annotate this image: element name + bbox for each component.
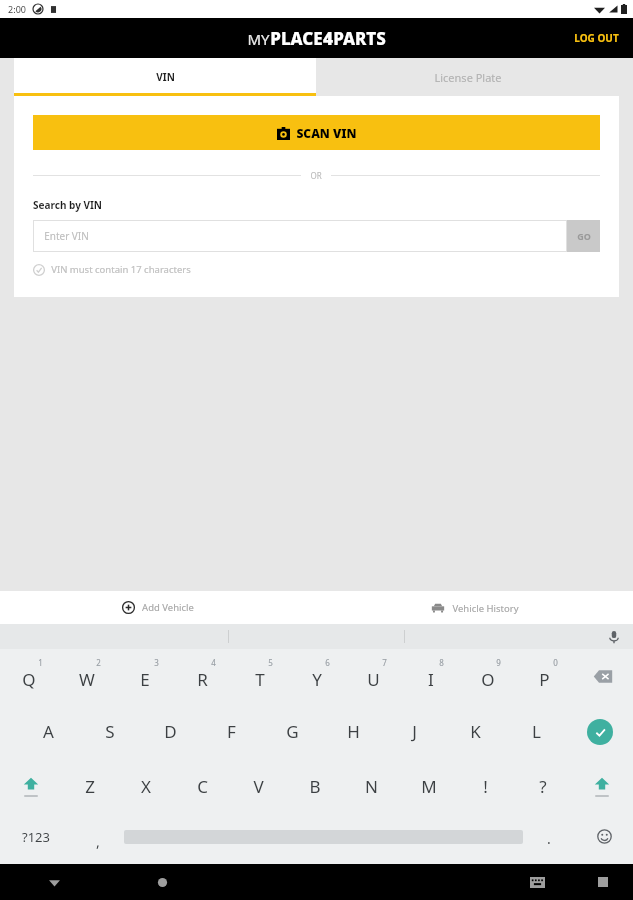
staticText: 0 bbox=[553, 657, 558, 668]
staticText: G bbox=[286, 720, 299, 743]
staticText: 8 bbox=[439, 657, 444, 668]
staticText: W bbox=[79, 668, 95, 691]
button[interactable]: H bbox=[323, 704, 384, 759]
staticText: Add Vehicle bbox=[142, 601, 194, 614]
staticText: X bbox=[141, 775, 151, 798]
staticText: 5 bbox=[268, 657, 273, 668]
button[interactable]: ! bbox=[457, 759, 514, 814]
staticText: Z bbox=[85, 775, 95, 798]
button[interactable]: Backspace bbox=[573, 649, 633, 704]
button[interactable]: X bbox=[118, 759, 174, 814]
staticText: MY bbox=[247, 29, 270, 49]
button[interactable]: Hide keyboard bbox=[501, 864, 573, 900]
button[interactable]: Home bbox=[108, 864, 216, 900]
button[interactable]: Q bbox=[0, 649, 58, 704]
button[interactable]: ?123 bbox=[0, 814, 72, 859]
button[interactable]: Add Vehicle bbox=[0, 591, 316, 624]
staticText: Vehicle History bbox=[452, 602, 519, 615]
button[interactable]: ? bbox=[514, 759, 571, 814]
staticText: S bbox=[105, 720, 115, 743]
staticText: VIN must contain 17 characters bbox=[51, 263, 191, 276]
staticText: OR bbox=[310, 170, 322, 181]
button[interactable]: F bbox=[201, 704, 262, 759]
staticText: 4 bbox=[323, 27, 333, 50]
button[interactable]: N bbox=[343, 759, 400, 814]
staticText: VIN bbox=[156, 70, 175, 84]
button[interactable]: B bbox=[286, 759, 343, 814]
button[interactable]: Recent apps bbox=[573, 864, 633, 900]
staticText: T bbox=[255, 668, 265, 691]
staticText: 2 bbox=[96, 657, 101, 668]
staticText: License Plate bbox=[434, 70, 502, 85]
staticText: R bbox=[197, 668, 208, 691]
staticText: E bbox=[140, 668, 150, 691]
button[interactable]: V bbox=[230, 759, 286, 814]
button[interactable]: Enter VIN bbox=[33, 220, 567, 252]
staticText: O bbox=[481, 668, 495, 691]
staticText: C bbox=[197, 775, 208, 798]
button[interactable]: M bbox=[400, 759, 457, 814]
button[interactable]: . bbox=[523, 814, 575, 859]
button[interactable]: W bbox=[58, 649, 116, 704]
button[interactable]: S bbox=[79, 704, 140, 759]
button[interactable]: G bbox=[262, 704, 323, 759]
staticText: U bbox=[367, 668, 380, 691]
button[interactable]: Space bbox=[124, 814, 523, 859]
button[interactable]: Z bbox=[62, 759, 118, 814]
staticText: LOG OUT bbox=[574, 31, 619, 45]
staticText: 4 bbox=[211, 657, 216, 668]
staticText: Q bbox=[22, 668, 36, 691]
staticText: H bbox=[347, 720, 360, 743]
button[interactable]: License Plate bbox=[316, 58, 619, 96]
button[interactable]: Shift bbox=[0, 759, 62, 814]
button[interactable]: Emoji bbox=[575, 814, 633, 859]
staticText: J bbox=[412, 720, 417, 743]
button[interactable]: Shift bbox=[571, 759, 633, 814]
button[interactable]: R bbox=[174, 649, 231, 704]
staticText: M bbox=[421, 775, 437, 798]
staticText: 2:00 bbox=[8, 3, 26, 15]
staticText: , bbox=[96, 832, 100, 851]
button[interactable]: D bbox=[140, 704, 201, 759]
staticText: ? bbox=[539, 775, 547, 798]
staticText: V bbox=[253, 775, 264, 798]
button[interactable]: Y bbox=[288, 649, 345, 704]
staticText: ?123 bbox=[22, 828, 50, 846]
button[interactable]: A bbox=[18, 704, 79, 759]
button[interactable]: C bbox=[174, 759, 230, 814]
staticText: 9 bbox=[496, 657, 501, 668]
button[interactable]: T bbox=[231, 649, 288, 704]
button[interactable]: LOG OUT bbox=[560, 21, 633, 55]
button[interactable]: Voice input bbox=[607, 630, 621, 644]
button[interactable]: J bbox=[384, 704, 445, 759]
staticText: Enter VIN bbox=[44, 229, 89, 243]
staticText: PLACE bbox=[270, 27, 323, 50]
button[interactable]: E bbox=[116, 649, 174, 704]
staticText: . bbox=[547, 829, 551, 848]
button[interactable]: I bbox=[402, 649, 459, 704]
button[interactable]: VIN bbox=[14, 58, 316, 96]
staticText: B bbox=[309, 775, 321, 798]
button[interactable]: L bbox=[506, 704, 567, 759]
staticText: PARTS bbox=[333, 27, 386, 50]
button[interactable]: Enter bbox=[567, 704, 633, 759]
button[interactable]: GO bbox=[567, 220, 600, 252]
button[interactable]: P bbox=[516, 649, 573, 704]
staticText: 1 bbox=[38, 657, 43, 668]
staticText: 3 bbox=[154, 657, 159, 668]
staticText: SCAN VIN bbox=[296, 125, 357, 141]
staticText: F bbox=[227, 720, 236, 743]
button[interactable]: , bbox=[72, 814, 124, 859]
staticText: 6 bbox=[325, 657, 330, 668]
button[interactable]: SCAN VIN bbox=[33, 115, 600, 150]
staticText: N bbox=[365, 775, 378, 798]
button[interactable]: Back bbox=[0, 864, 108, 900]
staticText: L bbox=[532, 720, 541, 743]
button[interactable]: K bbox=[445, 704, 506, 759]
staticText: D bbox=[164, 720, 177, 743]
button[interactable]: U bbox=[345, 649, 402, 704]
staticText: Search by VIN bbox=[33, 198, 102, 212]
staticText: Y bbox=[312, 668, 322, 691]
button[interactable]: Vehicle History bbox=[316, 591, 633, 624]
button[interactable]: O bbox=[459, 649, 516, 704]
